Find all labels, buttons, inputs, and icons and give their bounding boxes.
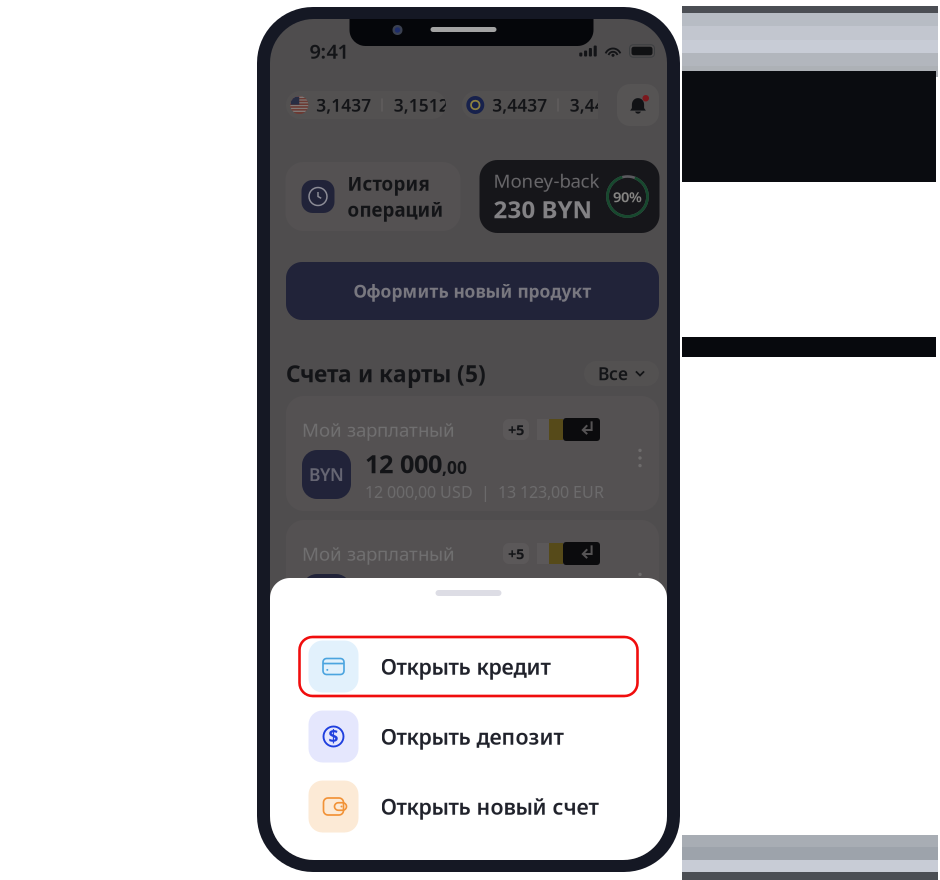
staticText: ,00 — [442, 456, 467, 479]
button[interactable]: 3,4437 — [462, 91, 622, 119]
button[interactable]: История — [285, 162, 460, 231]
staticText: Мой зарплатный — [302, 417, 455, 442]
staticText: +5 — [508, 544, 524, 563]
staticText: +5 — [508, 420, 524, 439]
button[interactable]: Notifications — [617, 84, 659, 126]
staticText: История — [347, 171, 429, 196]
button[interactable]: $ — [299, 707, 637, 766]
staticText: Открыть депозит — [380, 722, 563, 751]
staticText: Открыть кредит — [380, 652, 550, 681]
button[interactable]: 3,1437 — [286, 91, 446, 119]
staticText: Мой зарплатный — [302, 541, 455, 566]
button[interactable]: Оформить новый продукт — [286, 262, 659, 320]
staticText: 3,1512 — [394, 93, 449, 116]
button[interactable]: Открыть кредит — [299, 637, 637, 696]
staticText: ,00 — [442, 580, 467, 603]
staticText: Все — [598, 362, 628, 385]
button[interactable]: Money-back — [479, 160, 659, 233]
staticText: операций — [347, 197, 443, 222]
staticText: 230 BYN — [493, 193, 592, 225]
staticText: 3,4437 — [492, 93, 547, 116]
staticText: 12 000 — [365, 571, 442, 604]
staticText: Счета и карты (5) — [286, 358, 486, 388]
staticText: 90% — [613, 187, 642, 206]
staticText: $ — [328, 724, 338, 747]
button[interactable]: Мой зарплатный — [286, 396, 659, 511]
button[interactable]: Открыть новый счет — [299, 777, 637, 836]
staticText: Открыть новый счет — [380, 792, 598, 821]
staticText: 9:41 — [309, 38, 348, 64]
staticText: 12 000 — [365, 447, 442, 480]
button[interactable]: Все — [584, 361, 659, 386]
staticText: Оформить новый продукт — [353, 279, 591, 302]
staticText: Money-back — [493, 168, 599, 193]
staticText: 3,4437 — [570, 93, 625, 116]
staticText: 12 000,00 USD | 13 123,00 EUR — [365, 481, 604, 502]
staticText: BYN — [309, 463, 344, 486]
button[interactable]: Мой зарплатный — [286, 520, 659, 635]
staticText: 3,1437 — [316, 93, 371, 116]
